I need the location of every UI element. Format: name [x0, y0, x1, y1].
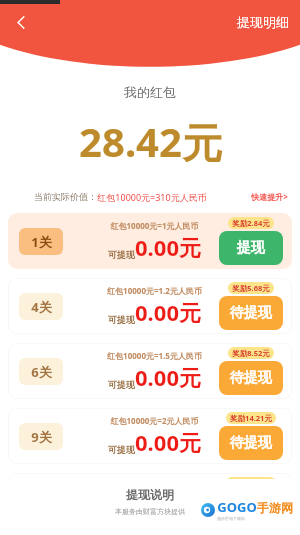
button[interactable]: 待提现	[219, 361, 283, 395]
staticText: 红包10000元=2元人民币	[110, 415, 199, 426]
staticText: 可提现	[108, 444, 135, 455]
staticText: 红包10000元=310元人民币	[97, 191, 207, 203]
staticText: 精品手游下载站	[217, 516, 245, 521]
staticText: 0.00元	[135, 427, 201, 457]
staticText: 待提现	[230, 499, 272, 517]
staticText: 奖励28.42元	[230, 478, 272, 488]
button[interactable]: 1关	[8, 213, 292, 269]
staticText: 奖励2.84元	[232, 218, 270, 228]
button[interactable]: 4关	[8, 278, 292, 334]
staticText: 6关	[31, 363, 52, 381]
button[interactable]: 快速提升>	[248, 189, 291, 204]
staticText: 1关	[31, 233, 52, 251]
staticText: 快速提升>	[251, 191, 288, 202]
staticText: 当前实际价值：	[34, 191, 97, 202]
button[interactable]: 待提现	[219, 426, 283, 460]
staticText: 待提现	[230, 434, 272, 452]
staticText: 9关	[31, 428, 52, 446]
button[interactable]: 9关	[8, 408, 292, 464]
staticText: 提现明细	[237, 14, 289, 30]
staticText: 奖励8.52元	[232, 348, 270, 358]
staticText: 红包10000元=1元人民币	[110, 220, 199, 231]
staticText: GOGO	[217, 498, 257, 516]
staticText: 红包10000元=1.5元人民币	[107, 350, 202, 361]
staticText: 红包10000元=1.2元人民币	[107, 285, 202, 296]
button[interactable]: 12关	[8, 473, 292, 529]
button[interactable]: 提现	[219, 231, 283, 265]
staticText: 可提现	[108, 379, 135, 390]
staticText: 可提现	[108, 509, 135, 520]
button[interactable]: 提现明细	[233, 10, 293, 34]
staticText: 奖励14.21元	[230, 413, 272, 423]
staticText: 待提现	[230, 304, 272, 322]
staticText: 0.00元	[135, 362, 201, 392]
staticText: 奖励5.68元	[232, 283, 270, 293]
staticText: 提现说明	[126, 487, 174, 502]
staticText: 手游网	[257, 500, 293, 515]
staticText: 可提现	[108, 314, 135, 325]
button[interactable]: 6关	[8, 343, 292, 399]
staticText: 0.00元	[135, 297, 201, 327]
button[interactable]: Back	[4, 5, 38, 39]
staticText: 28.42元	[79, 114, 222, 169]
staticText: 4关	[31, 298, 52, 316]
staticText: 待提现	[230, 369, 272, 387]
button[interactable]: 待提现	[219, 491, 283, 525]
staticText: 我的红包	[124, 84, 176, 100]
button[interactable]: 提现说明	[120, 486, 180, 503]
staticText: 0.00元	[135, 232, 201, 262]
button[interactable]: 待提现	[219, 296, 283, 330]
staticText: 本服务由财富方块提供	[115, 507, 185, 516]
staticText: 红包10000元=100元人民币	[105, 480, 203, 491]
staticText: 可提现	[108, 249, 135, 260]
staticText: 0.00元	[135, 492, 201, 522]
staticText: 提现	[237, 239, 265, 257]
